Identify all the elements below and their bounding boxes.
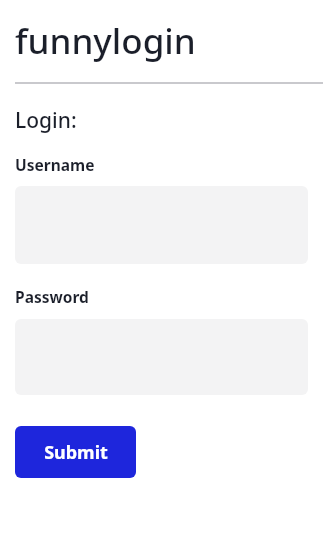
staticText: Login: [15, 106, 77, 135]
staticText: Submit [44, 440, 108, 465]
staticText: funnylogin [15, 17, 196, 65]
staticText: Username [15, 154, 95, 175]
staticText: Password [15, 286, 89, 307]
button[interactable]: Submit [15, 426, 136, 478]
